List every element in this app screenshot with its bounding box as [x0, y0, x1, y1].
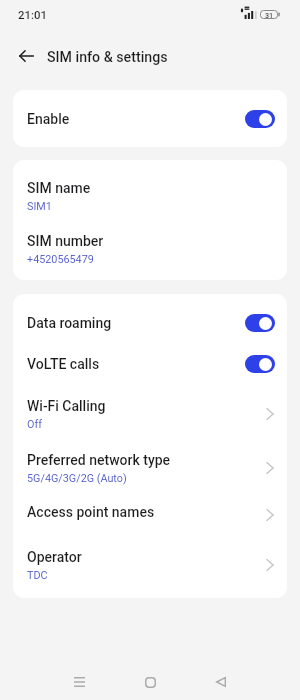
button[interactable]: Wi-Fi Calling [13, 383, 287, 439]
staticText: SIM number [27, 233, 104, 249]
staticText: Operator [27, 549, 82, 565]
button[interactable]: Enable [13, 98, 287, 139]
button[interactable]: Operator [13, 534, 287, 590]
staticText: Data roaming [27, 315, 112, 331]
staticText: TDC [27, 569, 48, 582]
button[interactable]: Recent apps [57, 652, 101, 700]
button[interactable]: Data roaming [13, 302, 287, 344]
staticText: SIM1 [27, 200, 52, 213]
button[interactable]: Back [199, 652, 243, 700]
staticText: Off [27, 418, 42, 431]
button[interactable]: Access point names [13, 490, 287, 534]
button[interactable]: Preferred network type [13, 439, 287, 490]
staticText: Enable [27, 111, 70, 127]
staticText: +4520565479 [27, 253, 94, 266]
button[interactable]: Toggle [245, 110, 275, 128]
button[interactable]: SIM number [13, 222, 287, 272]
staticText: 21:01 [18, 8, 47, 21]
button[interactable]: Toggle [245, 314, 275, 332]
staticText: SIM name [27, 180, 91, 196]
button[interactable]: SIM name [13, 168, 287, 222]
staticText: Preferred network type [27, 452, 171, 468]
button[interactable]: VoLTE calls [13, 344, 287, 383]
staticText: Access point names [27, 504, 155, 520]
staticText: 5G/4G/3G/2G (Auto) [27, 472, 127, 485]
staticText: Wi-Fi Calling [27, 398, 106, 414]
staticText: 31 [265, 11, 274, 19]
staticText: VoLTE calls [27, 356, 100, 372]
button[interactable]: Home [128, 652, 172, 700]
staticText: SIM info & settings [47, 49, 168, 66]
button[interactable]: Toggle [245, 355, 275, 373]
button[interactable]: Back [8, 37, 45, 74]
